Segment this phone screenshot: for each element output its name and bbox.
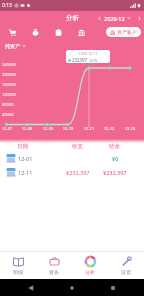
staticText: 元/克 — [89, 58, 98, 63]
staticText: 明细 — [13, 269, 23, 275]
staticText: 收支 — [72, 143, 83, 150]
staticText: 12-01 — [18, 155, 33, 162]
staticText: 200000 — [2, 72, 16, 77]
staticText: 财务 — [49, 269, 59, 275]
button[interactable]: 财务 — [36, 251, 72, 279]
staticText: 2020-12-11 — [68, 51, 108, 56]
staticText: 160000 — [2, 82, 16, 87]
staticText: 12-11 — [82, 126, 96, 131]
button[interactable]: Income — [29, 26, 41, 38]
button[interactable]: 12-01 — [0, 151, 144, 165]
button[interactable]: 明细 — [0, 251, 36, 279]
staticText: 日期 — [17, 143, 28, 150]
staticText: 232397 — [72, 57, 88, 63]
staticText: 12-12 — [102, 126, 116, 131]
button[interactable]: Back — [24, 281, 38, 295]
staticText: ¥0 — [112, 155, 119, 162]
button[interactable]: 分析 — [72, 251, 108, 279]
staticText: 2020-12 — [104, 15, 125, 22]
staticText: 40000 — [2, 112, 14, 117]
staticText: 120000 — [2, 92, 16, 97]
staticText: 12-13 — [123, 126, 137, 131]
staticText: ¥232,397 — [103, 169, 127, 176]
button[interactable]: 12-11 — [0, 165, 144, 179]
staticText: 分析 — [85, 269, 95, 275]
button[interactable]: Next month — [135, 11, 143, 25]
button[interactable]: Bank — [75, 26, 87, 38]
staticText: 纯资产 — [5, 43, 20, 49]
staticText: 240000 — [2, 62, 16, 67]
button[interactable]: Recents — [106, 281, 120, 295]
staticText: 结余 — [109, 143, 120, 150]
button[interactable]: 2020-12 — [104, 11, 131, 25]
button[interactable]: 资产账户 — [106, 27, 141, 37]
staticText: 12-09 — [41, 126, 55, 131]
staticText: 12-10 — [61, 126, 75, 131]
staticText: 12-07 — [0, 126, 14, 131]
button[interactable]: 纯资产 — [5, 41, 26, 50]
staticText: 80000 — [2, 102, 14, 107]
staticText: ¥232,397 — [66, 169, 90, 176]
button[interactable]: 设置 — [108, 251, 144, 279]
staticText: 0:13 — [2, 2, 12, 9]
staticText: 资产账户 — [117, 29, 137, 35]
button[interactable]: Previous month — [95, 11, 103, 25]
staticText: 12-08 — [20, 126, 34, 131]
button[interactable]: Shopping — [6, 26, 18, 38]
staticText: 12-11 — [18, 169, 33, 176]
staticText: 分析 — [66, 14, 79, 22]
staticText: 设置 — [121, 269, 131, 275]
button[interactable]: Home — [65, 281, 79, 295]
button[interactable]: Bills — [52, 26, 64, 38]
